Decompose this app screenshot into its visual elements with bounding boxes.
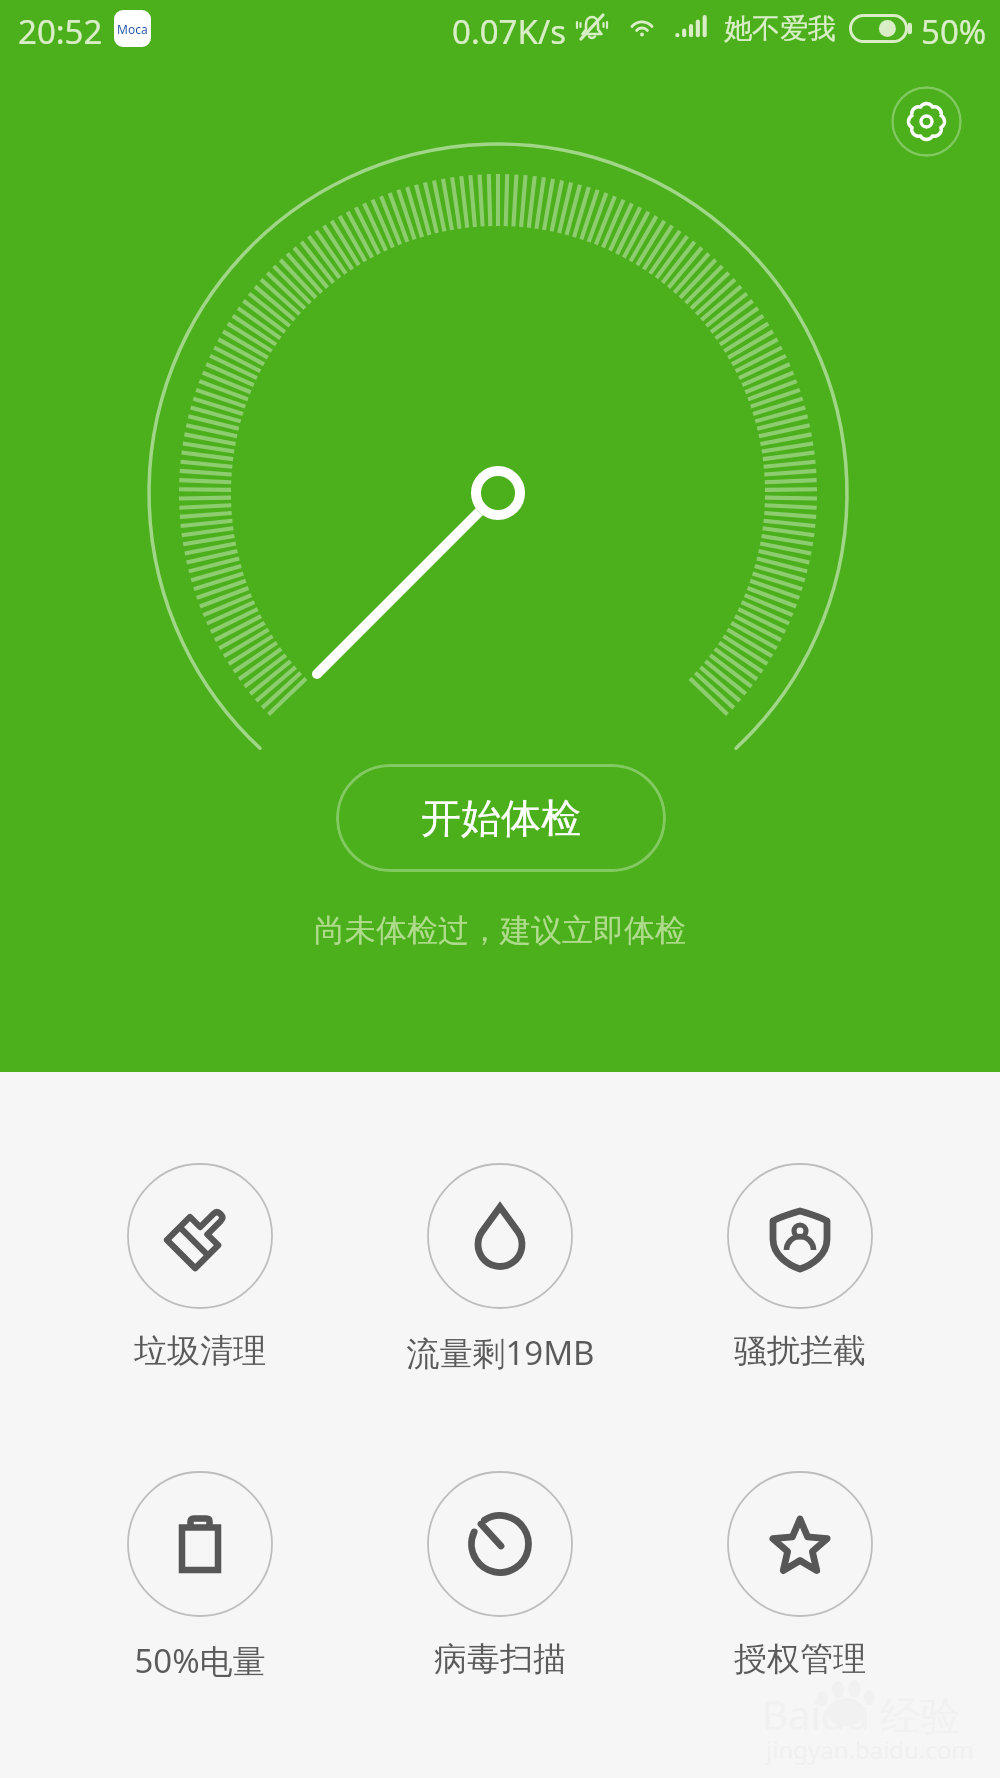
staticText: 20:52 bbox=[18, 9, 103, 54]
staticText: Moca bbox=[117, 21, 148, 37]
button[interactable]: 骚扰拦截 bbox=[650, 1163, 950, 1372]
staticText: 0.07K/s bbox=[452, 9, 566, 54]
staticText: 流量剩19MB bbox=[406, 1330, 595, 1375]
staticText: 骚扰拦截 bbox=[734, 1330, 866, 1372]
staticText: 尚未体检过，建议立即体检 bbox=[314, 911, 686, 950]
staticText: 授权管理 bbox=[734, 1638, 866, 1680]
staticText: 病毒扫描 bbox=[434, 1638, 566, 1680]
staticText: 她不爱我 bbox=[724, 11, 836, 46]
staticText: 50%电量 bbox=[134, 1638, 266, 1683]
button[interactable]: 开始体检 bbox=[336, 764, 666, 872]
staticText: 开始体检 bbox=[421, 793, 581, 843]
button[interactable]: 授权管理 bbox=[650, 1471, 950, 1680]
button[interactable]: 流量剩19MB bbox=[350, 1163, 650, 1375]
button[interactable]: 病毒扫描 bbox=[350, 1471, 650, 1680]
staticText: 50% bbox=[921, 9, 987, 54]
button[interactable]: 50%电量 bbox=[50, 1471, 350, 1683]
button[interactable]: 垃圾清理 bbox=[50, 1163, 350, 1372]
button[interactable]: Settings bbox=[891, 86, 962, 157]
staticText: 垃圾清理 bbox=[134, 1330, 266, 1372]
